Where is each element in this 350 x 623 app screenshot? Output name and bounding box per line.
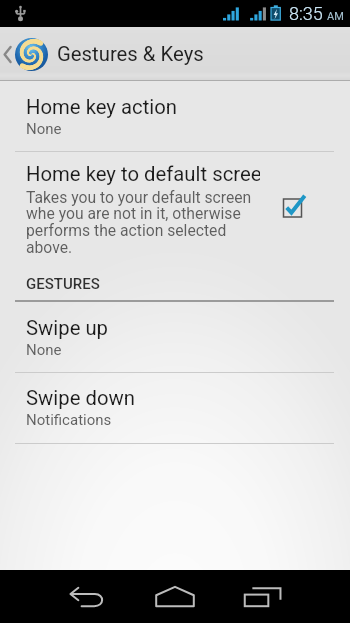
button[interactable]: Home key action [0, 81, 350, 151]
staticText: Home key to default screen [26, 162, 260, 186]
staticText: AM [327, 10, 344, 23]
staticText: Home key action [26, 95, 178, 119]
staticText: GESTURES [26, 275, 100, 293]
staticText: None [26, 120, 62, 138]
staticText: Gestures & Keys [57, 42, 204, 66]
staticText: Swipe up [26, 316, 109, 340]
button[interactable]: Home key to default screen [0, 152, 350, 260]
staticText: Swipe down [26, 386, 135, 410]
button[interactable]: Swipe up [0, 302, 350, 372]
button[interactable]: Swipe down [0, 373, 350, 443]
staticText: 8:35 [289, 3, 323, 24]
button[interactable]: Navigate up [0, 33, 48, 76]
button[interactable]: Toggle home key to default screen [280, 195, 306, 221]
button[interactable]: Home [131, 570, 219, 623]
button[interactable]: Back [43, 570, 131, 623]
staticText: Takes you to your default screen whe you… [26, 188, 252, 257]
button[interactable]: Recent apps [219, 570, 307, 623]
staticText: Notifications [26, 411, 112, 429]
staticText: None [26, 341, 62, 359]
